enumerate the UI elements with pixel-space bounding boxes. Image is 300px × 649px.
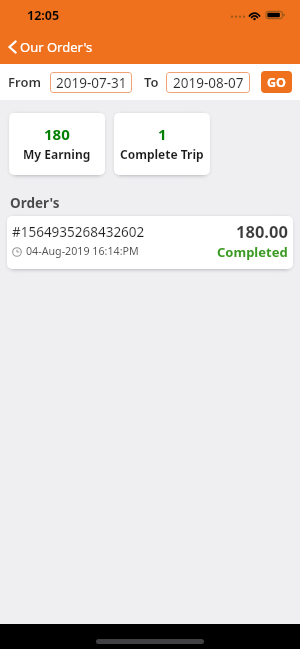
button[interactable]: GO [261, 71, 292, 93]
staticText: 180 [44, 124, 70, 144]
staticText: My Earning [23, 146, 91, 162]
button[interactable]: #1564935268432602 [7, 216, 293, 269]
staticText: From [8, 73, 41, 91]
staticText: To [144, 73, 159, 91]
staticText: 2019-07-31 [56, 74, 127, 92]
staticText: Complete Trip [120, 146, 204, 162]
staticText: GO [267, 74, 286, 91]
button[interactable]: 2019-07-31 [50, 72, 132, 93]
staticText: 180.00 [236, 220, 288, 242]
button[interactable]: 1 [114, 113, 210, 175]
button[interactable]: 2019-08-07 [166, 72, 250, 93]
button[interactable]: 180 [9, 113, 105, 175]
staticText: Completed [217, 243, 288, 261]
button[interactable]: Our Order's [0, 36, 99, 58]
staticText: 04-Aug-2019 16:14:PM [26, 244, 139, 259]
staticText: 12:05 [27, 7, 60, 24]
staticText: Our Order's [20, 38, 93, 56]
staticText: 1 [158, 124, 167, 144]
staticText: #1564935268432602 [12, 223, 145, 241]
staticText: 2019-08-07 [173, 74, 244, 92]
staticText: Order's [10, 194, 60, 212]
